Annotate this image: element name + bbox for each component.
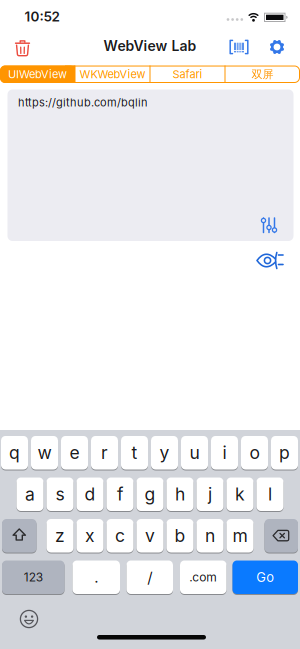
staticText: o	[249, 442, 259, 463]
staticText: 10:52	[24, 8, 59, 24]
button[interactable]: x	[76, 519, 103, 553]
button[interactable]: Shift	[2, 519, 36, 553]
staticText: p	[279, 442, 290, 463]
button[interactable]: WKWebView	[75, 65, 150, 83]
staticText: e	[69, 442, 79, 463]
button[interactable]: UIWebView	[0, 65, 75, 83]
staticText: h	[175, 484, 185, 504]
button[interactable]: Safari	[150, 65, 225, 83]
button[interactable]: 123	[2, 560, 64, 595]
button[interactable]: y	[151, 436, 178, 470]
button[interactable]: b	[166, 519, 193, 553]
button[interactable]: q	[1, 436, 28, 470]
button[interactable]: o	[241, 436, 268, 470]
staticText: d	[84, 484, 95, 504]
button[interactable]: e	[61, 436, 88, 470]
staticText: Safari	[172, 68, 202, 81]
staticText: j	[208, 484, 212, 504]
staticText: https://github.com/bqlin	[18, 96, 147, 109]
button[interactable]: t	[121, 436, 148, 470]
button[interactable]: m	[226, 519, 253, 553]
staticText: g	[144, 484, 155, 504]
staticText: w	[37, 442, 51, 463]
staticText: k	[235, 484, 245, 504]
staticText: i	[222, 442, 226, 463]
button[interactable]: s	[46, 477, 73, 512]
button[interactable]: Delete	[10, 35, 35, 59]
staticText: l	[268, 484, 272, 504]
staticText: /	[147, 568, 152, 586]
staticText: f	[117, 484, 123, 504]
staticText: WKWebView	[79, 68, 145, 81]
staticText: t	[131, 442, 137, 463]
button[interactable]: h	[166, 477, 193, 512]
button[interactable]: g	[136, 477, 163, 512]
button[interactable]: Go	[232, 560, 298, 595]
staticText: 双屏	[251, 67, 273, 81]
button[interactable]: u	[181, 436, 208, 470]
staticText: r	[101, 442, 108, 463]
staticText: z	[55, 525, 65, 546]
button[interactable]: n	[196, 519, 223, 553]
button[interactable]: i	[211, 436, 238, 470]
button[interactable]: l	[256, 477, 283, 512]
button[interactable]: Emoji	[18, 608, 40, 630]
staticText: UIWebView	[8, 68, 67, 81]
staticText: b	[174, 525, 185, 546]
staticText: 123	[24, 570, 43, 584]
button[interactable]: 双屏	[225, 65, 300, 83]
staticText: y	[159, 442, 169, 463]
button[interactable]: c	[106, 519, 133, 553]
button[interactable]: p	[271, 436, 298, 470]
staticText: Go	[256, 570, 274, 585]
staticText: .	[94, 568, 98, 586]
staticText: u	[189, 442, 199, 463]
button[interactable]: f	[106, 477, 133, 512]
button[interactable]: a	[16, 477, 43, 512]
staticText: q	[9, 442, 20, 463]
button[interactable]: w	[31, 436, 58, 470]
button[interactable]: v	[136, 519, 163, 553]
staticText: a	[25, 484, 35, 504]
staticText: s	[55, 484, 64, 504]
staticText: c	[115, 525, 125, 546]
button[interactable]: j	[196, 477, 223, 512]
button[interactable]: d	[76, 477, 103, 512]
button[interactable]: Adjust settings	[258, 214, 280, 236]
button[interactable]: .com	[180, 560, 226, 595]
button[interactable]: Scan barcode	[227, 36, 251, 58]
button[interactable]: Settings	[266, 36, 288, 58]
staticText: x	[85, 525, 95, 546]
staticText: .com	[189, 570, 217, 584]
button[interactable]: Delete	[264, 519, 298, 553]
button[interactable]: k	[226, 477, 253, 512]
button[interactable]: r	[91, 436, 118, 470]
button[interactable]: /	[126, 560, 173, 595]
button[interactable]: Launch	[254, 248, 287, 274]
staticText: m	[232, 525, 247, 546]
button[interactable]: .	[72, 560, 120, 595]
staticText: v	[145, 525, 155, 546]
staticText: WebView Lab	[103, 38, 196, 54]
button[interactable]: z	[46, 519, 73, 553]
staticText: n	[205, 525, 215, 546]
